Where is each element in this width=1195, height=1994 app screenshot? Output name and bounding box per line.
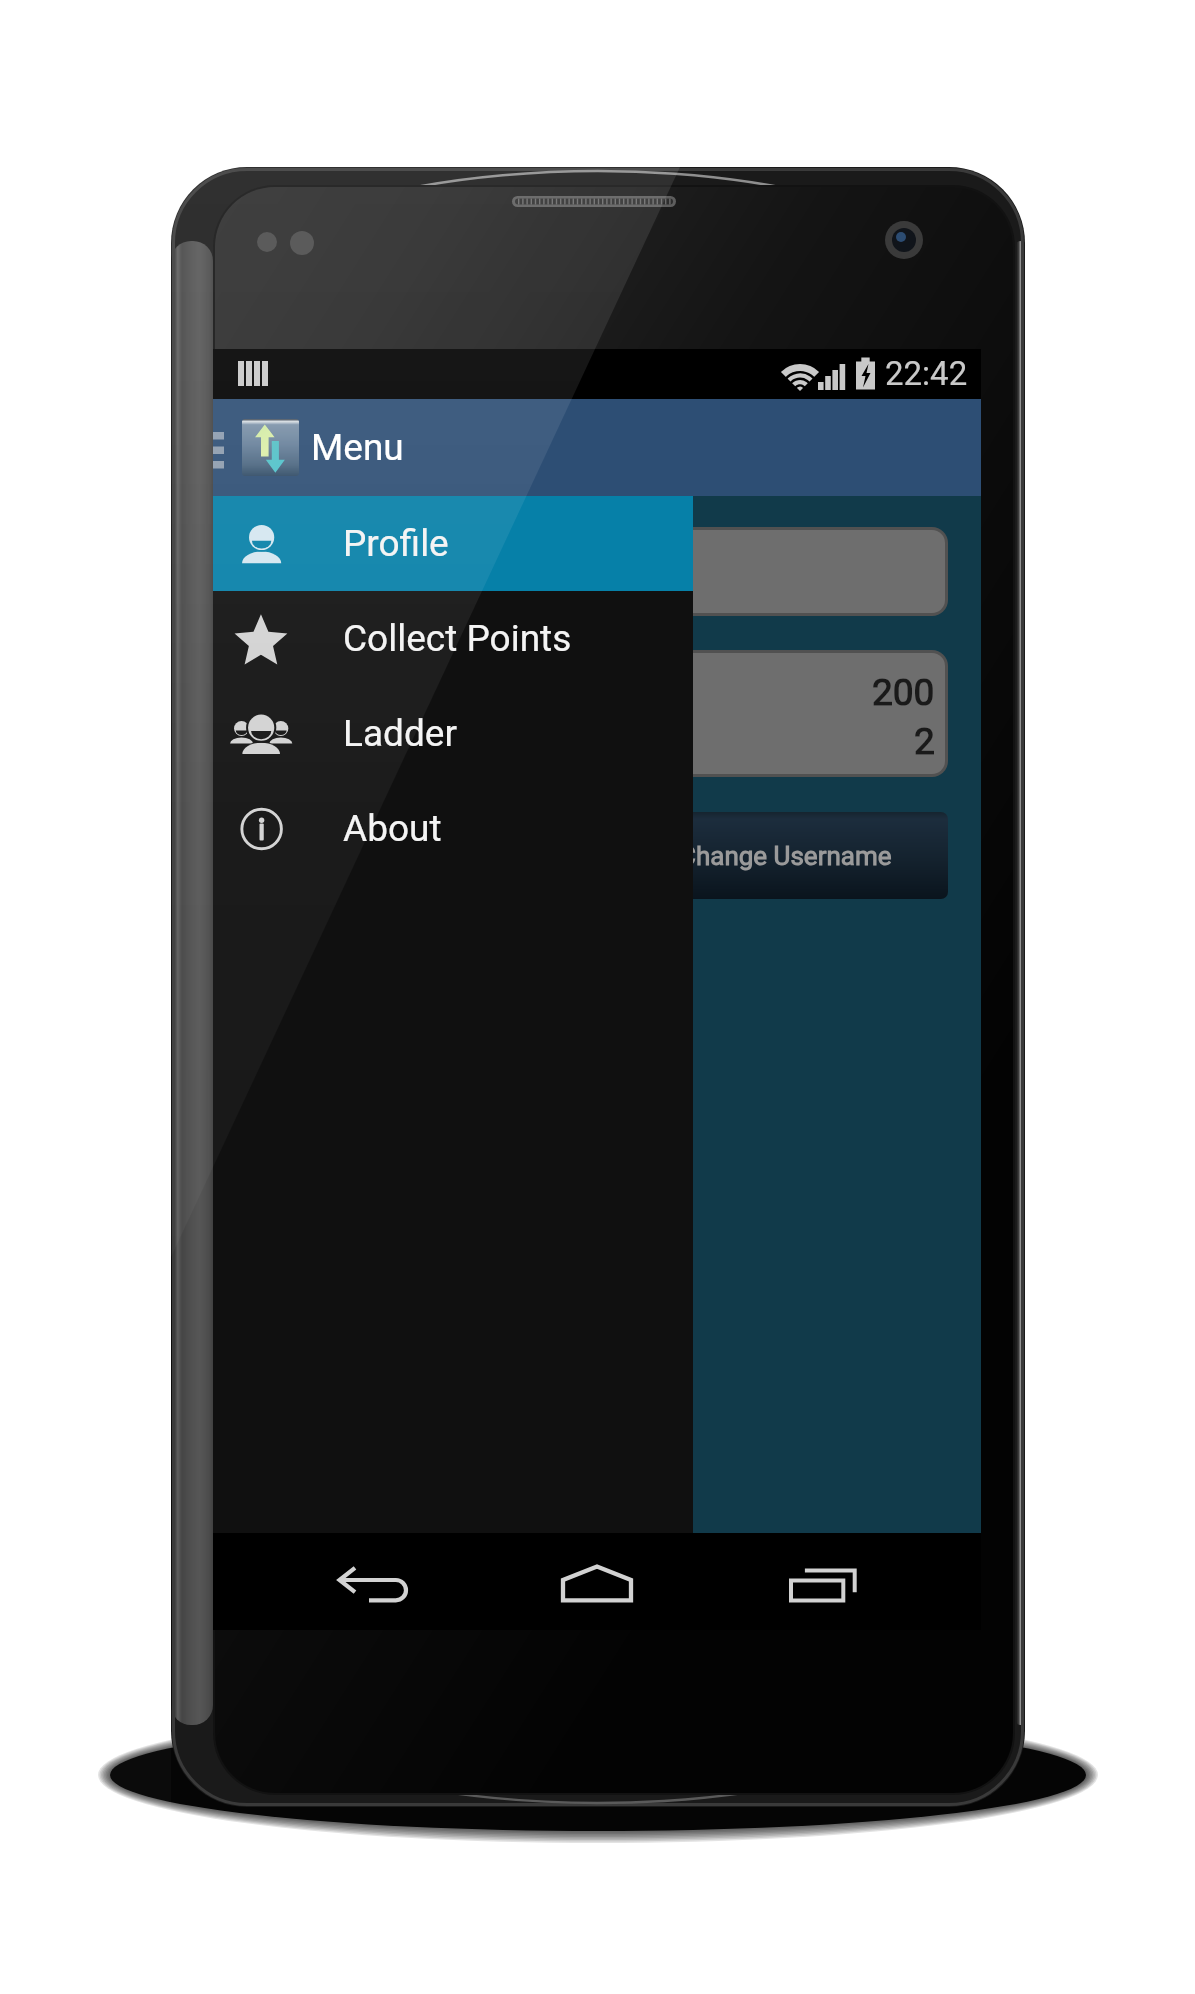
- staticText: Menu: [311, 426, 404, 469]
- button[interactable]: Change Username: [246, 812, 948, 899]
- button[interactable]: Open navigation drawer: [213, 399, 224, 496]
- staticText: Ladder: [343, 712, 457, 755]
- staticText: Profile: [343, 522, 449, 565]
- button[interactable]: Recent apps: [781, 1533, 865, 1630]
- button[interactable]: Collect Points: [213, 591, 693, 686]
- staticText: 200: [872, 671, 935, 714]
- button[interactable]: [249, 530, 945, 613]
- button[interactable]: Back: [331, 1533, 415, 1630]
- staticText: Collect Points: [343, 617, 572, 660]
- button[interactable]: Home: [555, 1533, 639, 1630]
- staticText: 2: [914, 720, 935, 763]
- button[interactable]: About: [213, 781, 693, 876]
- button[interactable]: 200: [249, 653, 945, 774]
- button[interactable]: Profile: [213, 496, 693, 591]
- button[interactable]: Ladder: [213, 686, 693, 781]
- staticText: 22:42: [885, 354, 968, 393]
- staticText: About: [343, 807, 442, 850]
- staticText: Change Username: [679, 841, 892, 871]
